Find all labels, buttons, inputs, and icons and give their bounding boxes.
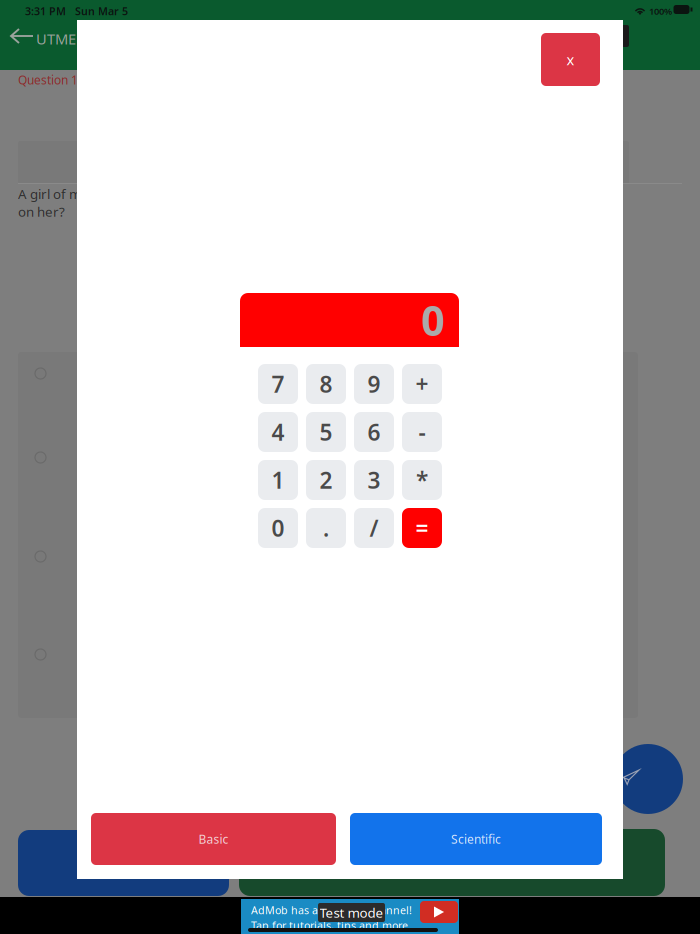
button[interactable]: * bbox=[402, 460, 442, 500]
staticText: 6 bbox=[367, 417, 380, 447]
staticText: 3 bbox=[367, 465, 380, 495]
staticText: Tap for tutorials, tips and more. bbox=[251, 918, 411, 932]
staticText: Sun Mar 5 bbox=[75, 4, 128, 18]
button[interactable]: 9 bbox=[354, 364, 394, 404]
staticText: x bbox=[566, 50, 574, 69]
staticText: Basic bbox=[198, 831, 228, 847]
staticText: / bbox=[369, 513, 378, 543]
button[interactable]: / bbox=[354, 508, 394, 548]
staticText: 2 bbox=[319, 465, 332, 495]
button[interactable]: 8 bbox=[306, 364, 346, 404]
button[interactable]: Scientific bbox=[350, 813, 602, 865]
staticText: 0 bbox=[271, 513, 284, 543]
staticText: = bbox=[415, 513, 428, 543]
staticText: B bbox=[76, 143, 87, 164]
staticText: on her? bbox=[18, 203, 65, 220]
staticText: 100% bbox=[649, 5, 672, 17]
staticText: 4 bbox=[271, 417, 284, 447]
button[interactable]: 5 bbox=[306, 412, 346, 452]
button[interactable]: 3 bbox=[354, 460, 394, 500]
staticText: Test mode bbox=[319, 904, 383, 921]
staticText: 8 bbox=[319, 369, 332, 399]
staticText: 9 bbox=[367, 369, 380, 399]
staticText: UTME — Physics 2019 bbox=[36, 29, 185, 48]
button[interactable]: = bbox=[402, 508, 442, 548]
staticText: Scientific bbox=[451, 831, 501, 847]
staticText: 5 bbox=[319, 417, 332, 447]
staticText: 1 bbox=[271, 465, 284, 495]
button[interactable]: 1 bbox=[258, 460, 298, 500]
button[interactable]: 0 bbox=[258, 508, 298, 548]
button[interactable]: Basic bbox=[91, 813, 336, 865]
button[interactable]: 2 bbox=[306, 460, 346, 500]
button[interactable]: 4 bbox=[258, 412, 298, 452]
button[interactable]: 6 bbox=[354, 412, 394, 452]
staticText: AdMob has a YouTube channel! bbox=[251, 903, 412, 917]
staticText: + bbox=[415, 369, 428, 399]
button[interactable]: 7 bbox=[258, 364, 298, 404]
button[interactable]: Close bbox=[541, 33, 600, 86]
staticText: 0 bbox=[421, 293, 445, 347]
staticText: * bbox=[416, 465, 428, 495]
staticText: 7 bbox=[271, 369, 284, 399]
staticText: - bbox=[418, 417, 425, 447]
staticText: 3:31 PM bbox=[25, 4, 66, 18]
staticText: Question 1 of 40 bbox=[18, 72, 109, 88]
button[interactable]: - bbox=[402, 412, 442, 452]
staticText: . bbox=[323, 513, 329, 543]
button[interactable]: + bbox=[402, 364, 442, 404]
staticText: A girl of mass 60 kg stands on a horizon… bbox=[18, 185, 454, 203]
button[interactable]: . bbox=[306, 508, 346, 548]
